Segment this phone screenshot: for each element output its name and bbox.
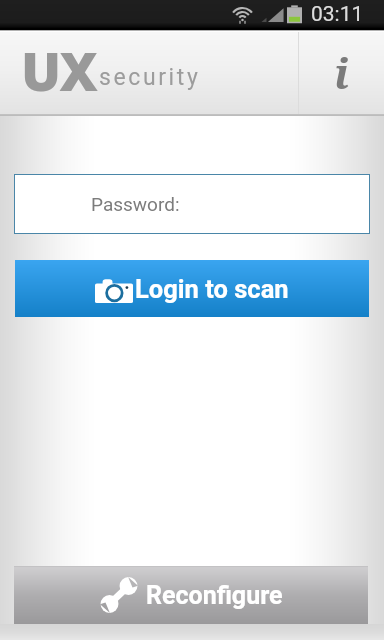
staticText: Login to scan xyxy=(135,274,289,304)
button[interactable]: Reconfigure xyxy=(14,566,368,624)
button[interactable]: Password: xyxy=(15,175,369,233)
staticText: Reconfigure xyxy=(146,581,283,610)
staticText: 03:11 xyxy=(311,2,364,27)
staticText: UX xyxy=(21,34,97,106)
staticText: i xyxy=(334,44,349,101)
button[interactable]: Info xyxy=(299,32,384,114)
staticText: security xyxy=(99,64,201,91)
button[interactable]: Login to scan xyxy=(15,260,369,317)
staticText: Password: xyxy=(91,193,180,215)
